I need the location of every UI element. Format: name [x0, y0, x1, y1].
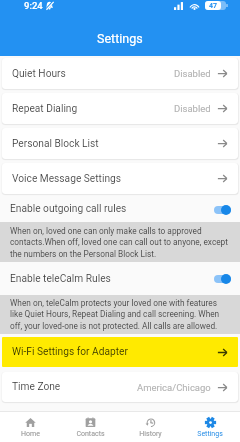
staticText: When on, teleCalm protects your loved on…: [10, 298, 230, 331]
button[interactable]: Repeat Dialing: [2, 93, 238, 124]
staticText: 47: [209, 2, 218, 10]
staticText: Settings: [97, 31, 143, 46]
button[interactable]: Contacts: [60, 413, 120, 442]
button[interactable]: Wi-Fi Settings for Adapter: [2, 337, 238, 367]
staticText: Voice Message Settings: [12, 173, 122, 185]
staticText: When on, loved one can only make calls t…: [10, 226, 230, 259]
staticText: Time Zone: [12, 381, 61, 393]
staticText: History: [139, 430, 162, 438]
button[interactable]: Enable outgoing call rules: [0, 196, 240, 222]
staticText: Enable outgoing call rules: [10, 203, 127, 215]
staticText: Home: [21, 430, 40, 438]
staticText: Settings: [197, 430, 223, 438]
button[interactable]: Time Zone: [2, 372, 238, 402]
staticText: Repeat Dialing: [12, 103, 78, 115]
button[interactable]: Personal Block List: [2, 128, 238, 159]
button[interactable]: Settings: [180, 413, 240, 442]
staticText: Wi-Fi Settings for Adapter: [12, 346, 128, 358]
button[interactable]: Enable teleCalm Rules: [0, 262, 240, 295]
staticText: Personal Block List: [12, 138, 99, 150]
button[interactable]: Voice Message Settings: [2, 163, 238, 194]
staticText: Contacts: [76, 430, 105, 438]
staticText: Quiet Hours: [12, 68, 66, 80]
staticText: 9:24: [24, 0, 43, 11]
staticText: Disabled: [174, 103, 211, 114]
staticText: Disabled: [174, 68, 211, 79]
staticText: America/Chicago: [137, 382, 211, 393]
button[interactable]: Quiet Hours: [2, 58, 238, 89]
staticText: Enable teleCalm Rules: [10, 273, 111, 285]
button[interactable]: History: [120, 413, 180, 442]
button[interactable]: Home: [0, 413, 60, 442]
